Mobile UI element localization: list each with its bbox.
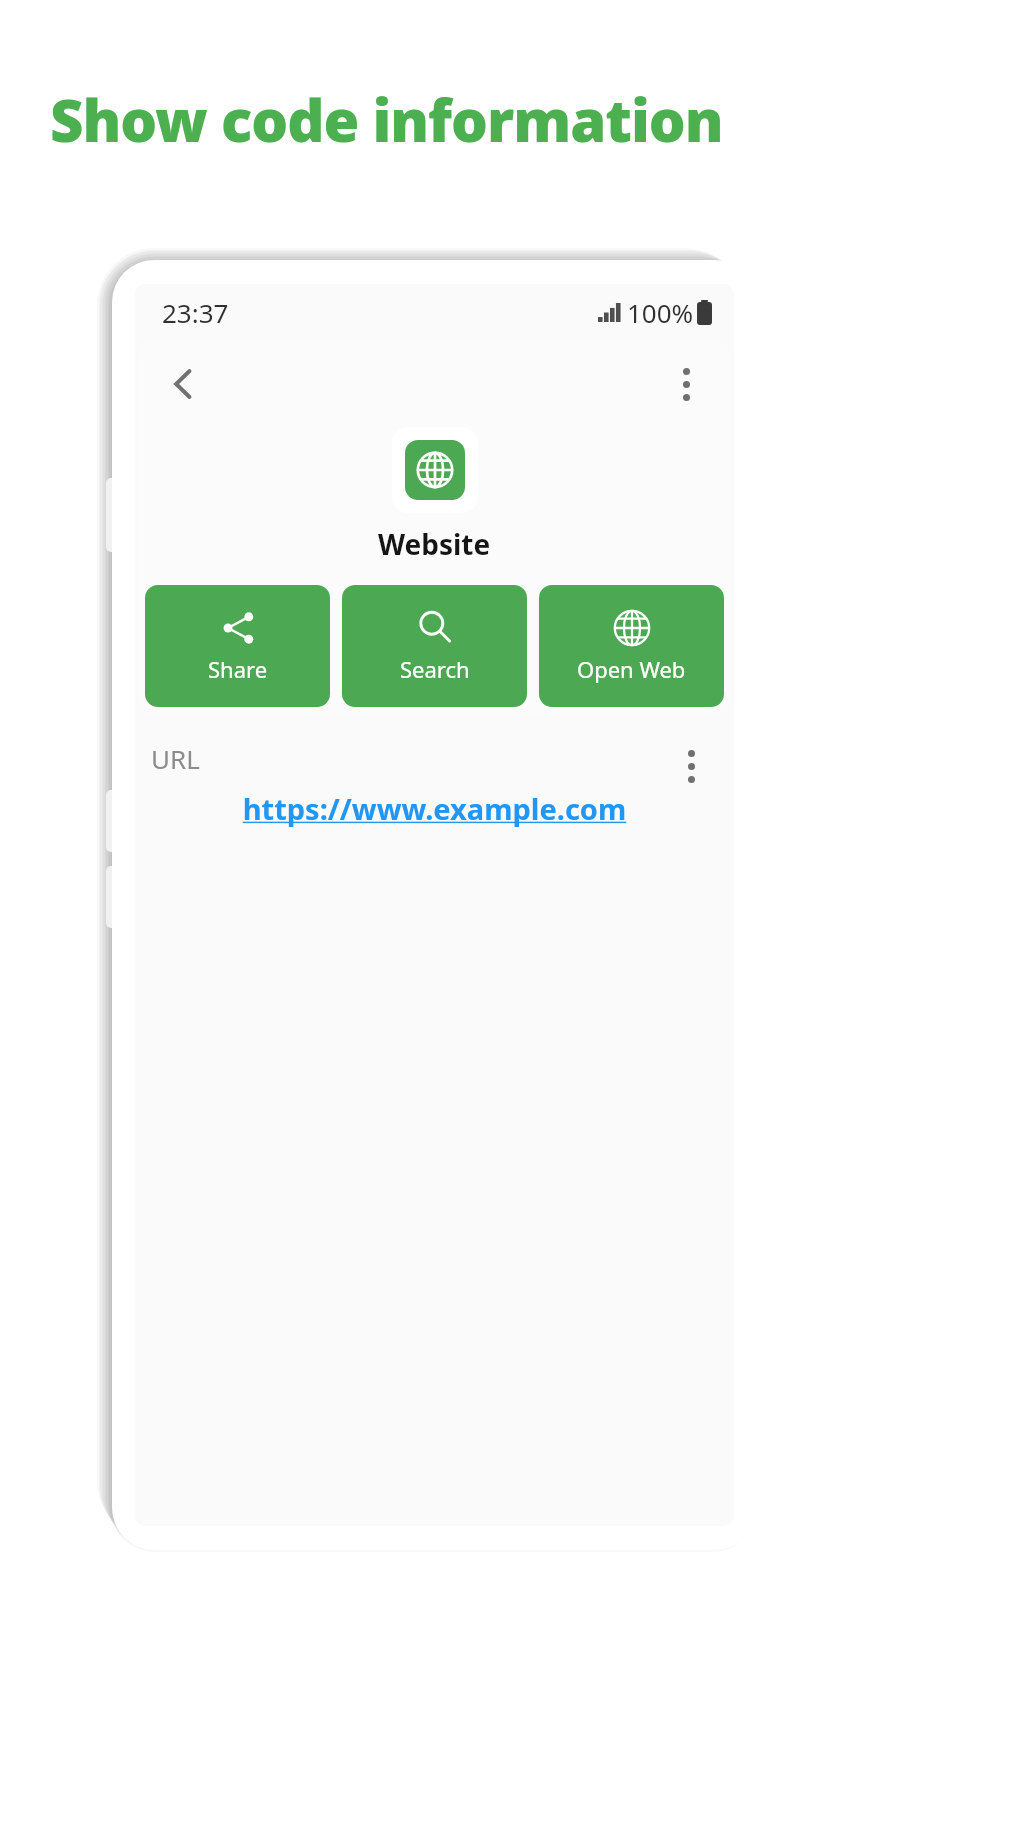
button[interactable]: Search bbox=[342, 585, 527, 707]
staticText: 23:37 bbox=[162, 295, 229, 330]
staticText: Search bbox=[400, 654, 470, 684]
staticText: URL bbox=[151, 741, 200, 776]
staticText: Show code information bbox=[50, 80, 723, 159]
staticText: Open Web bbox=[577, 654, 686, 684]
button[interactable]: Share bbox=[145, 585, 330, 707]
staticText: Website bbox=[378, 525, 491, 563]
staticText: Share bbox=[208, 654, 268, 684]
button[interactable]: Back bbox=[146, 347, 220, 421]
staticText: 100% bbox=[627, 295, 694, 330]
button[interactable]: More options bbox=[656, 731, 726, 801]
button[interactable]: Website icon bbox=[392, 427, 478, 513]
button[interactable]: More options bbox=[649, 347, 723, 421]
button[interactable]: https://www.example.com bbox=[135, 789, 734, 828]
button[interactable]: Open Web bbox=[539, 585, 724, 707]
